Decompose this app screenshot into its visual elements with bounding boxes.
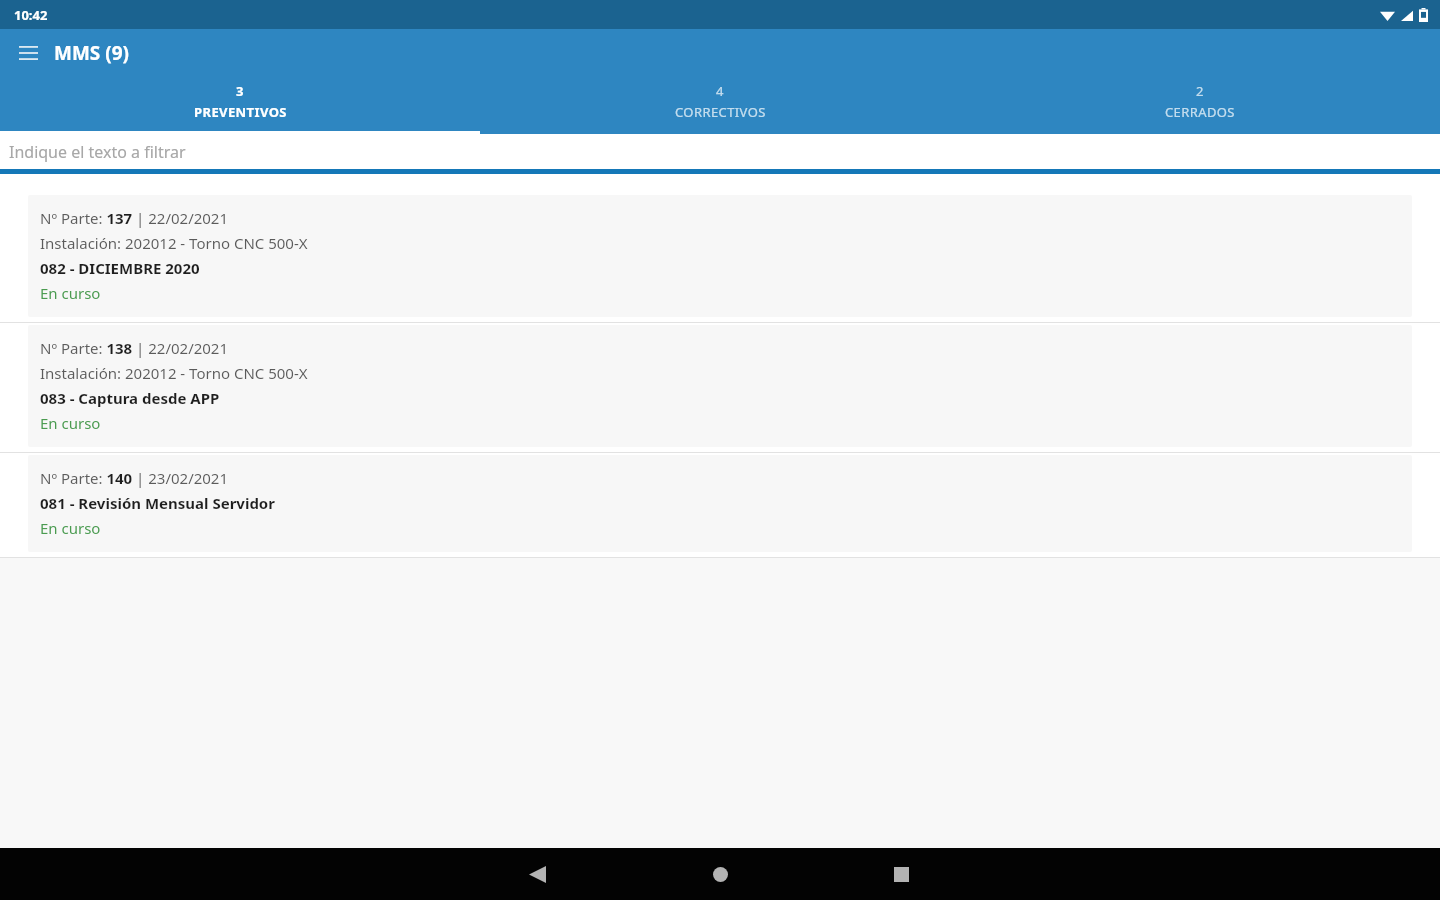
staticText: 3 — [236, 82, 244, 100]
staticText: MMS (9) — [54, 40, 129, 66]
staticText: Indique el texto a filtrar — [9, 141, 186, 163]
staticText: 2 — [1196, 82, 1204, 100]
button[interactable]: 2 — [960, 76, 1440, 134]
staticText: CERRADOS — [1165, 103, 1235, 121]
staticText: En curso — [40, 413, 101, 433]
staticText: CORRECTIVOS — [675, 103, 766, 121]
button[interactable]: Home — [696, 850, 744, 898]
button[interactable]: 4 — [480, 76, 960, 134]
staticText: Nº Parte: 140 | 23/02/2021 — [40, 468, 229, 488]
button[interactable]: Nº Parte: 140 | 23/02/2021 — [28, 455, 1412, 552]
button[interactable]: Indique el texto a filtrar — [0, 134, 1440, 169]
button[interactable]: Open navigation menu — [10, 35, 46, 71]
staticText: 082 - DICIEMBRE 2020 — [40, 258, 200, 278]
staticText: Instalación: 202012 - Torno CNC 500-X — [40, 363, 308, 383]
staticText: 083 - Captura desde APP — [40, 388, 220, 408]
button[interactable]: Nº Parte: 137 | 22/02/2021 — [28, 195, 1412, 317]
staticText: En curso — [40, 518, 101, 538]
button[interactable]: Recent apps — [877, 850, 925, 898]
button[interactable]: Back — [513, 850, 561, 898]
staticText: 081 - Revisión Mensual Servidor — [40, 493, 275, 513]
button[interactable]: 3 — [0, 76, 480, 134]
staticText: PREVENTIVOS — [194, 103, 287, 121]
button[interactable]: Nº Parte: 138 | 22/02/2021 — [28, 325, 1412, 447]
staticText: Nº Parte: 138 | 22/02/2021 — [40, 338, 229, 358]
staticText: En curso — [40, 283, 101, 303]
staticText: Nº Parte: 137 | 22/02/2021 — [40, 208, 229, 228]
staticText: Instalación: 202012 - Torno CNC 500-X — [40, 233, 308, 253]
staticText: 4 — [716, 82, 724, 100]
staticText: 10:42 — [14, 6, 48, 24]
